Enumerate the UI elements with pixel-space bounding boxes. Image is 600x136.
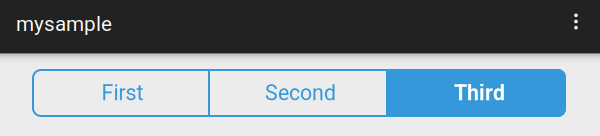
button[interactable]: Third [388,69,566,117]
staticText: Second [265,80,336,105]
button[interactable]: More options [554,0,598,43]
button[interactable]: First [32,69,208,117]
staticText: Third [454,80,505,105]
button[interactable]: Second [210,69,386,117]
staticText: mysample [16,12,112,36]
staticText: First [101,80,143,105]
